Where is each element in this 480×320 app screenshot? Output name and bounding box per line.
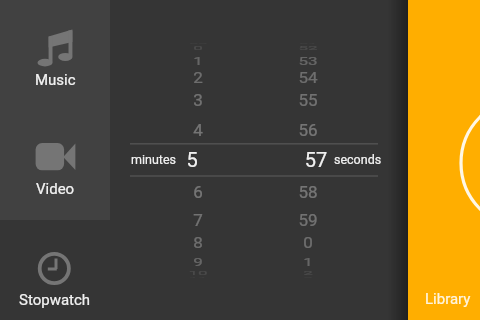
staticText: 7 [158, 210, 238, 230]
staticText: 5 [152, 148, 232, 171]
staticText: 2 [268, 270, 348, 276]
staticText: 6 [158, 182, 238, 202]
staticText: Video [36, 180, 75, 198]
staticText: 56 [268, 120, 348, 140]
button[interactable]: Video [0, 113, 110, 207]
staticText: 52 [268, 45, 348, 51]
staticText: 10 [158, 270, 238, 276]
staticText: 57 [276, 148, 356, 171]
staticText: minutes [131, 152, 176, 167]
staticText: 1 [158, 55, 238, 67]
button[interactable]: Library [408, 0, 480, 320]
staticText: 2 [158, 69, 238, 87]
staticText: 58 [268, 182, 348, 202]
staticText: 1 [268, 256, 348, 268]
staticText: 59 [268, 210, 348, 230]
staticText: 53 [268, 55, 348, 67]
staticText: Stopwatch [19, 291, 91, 309]
staticText: 0 [268, 234, 348, 252]
staticText: Music [35, 71, 76, 89]
staticText: 8 [158, 234, 238, 252]
staticText: 4 [158, 120, 238, 140]
staticText: 54 [268, 69, 348, 87]
staticText: 9 [158, 256, 238, 268]
button[interactable]: Stopwatch [0, 224, 110, 318]
staticText: 0 [158, 45, 238, 51]
staticText: Library [425, 290, 471, 308]
staticText: 55 [268, 90, 348, 110]
staticText: 3 [158, 90, 238, 110]
staticText: seconds [334, 152, 382, 167]
button[interactable]: Music [0, 4, 110, 98]
button[interactable]: 59 [0, 0, 480, 320]
